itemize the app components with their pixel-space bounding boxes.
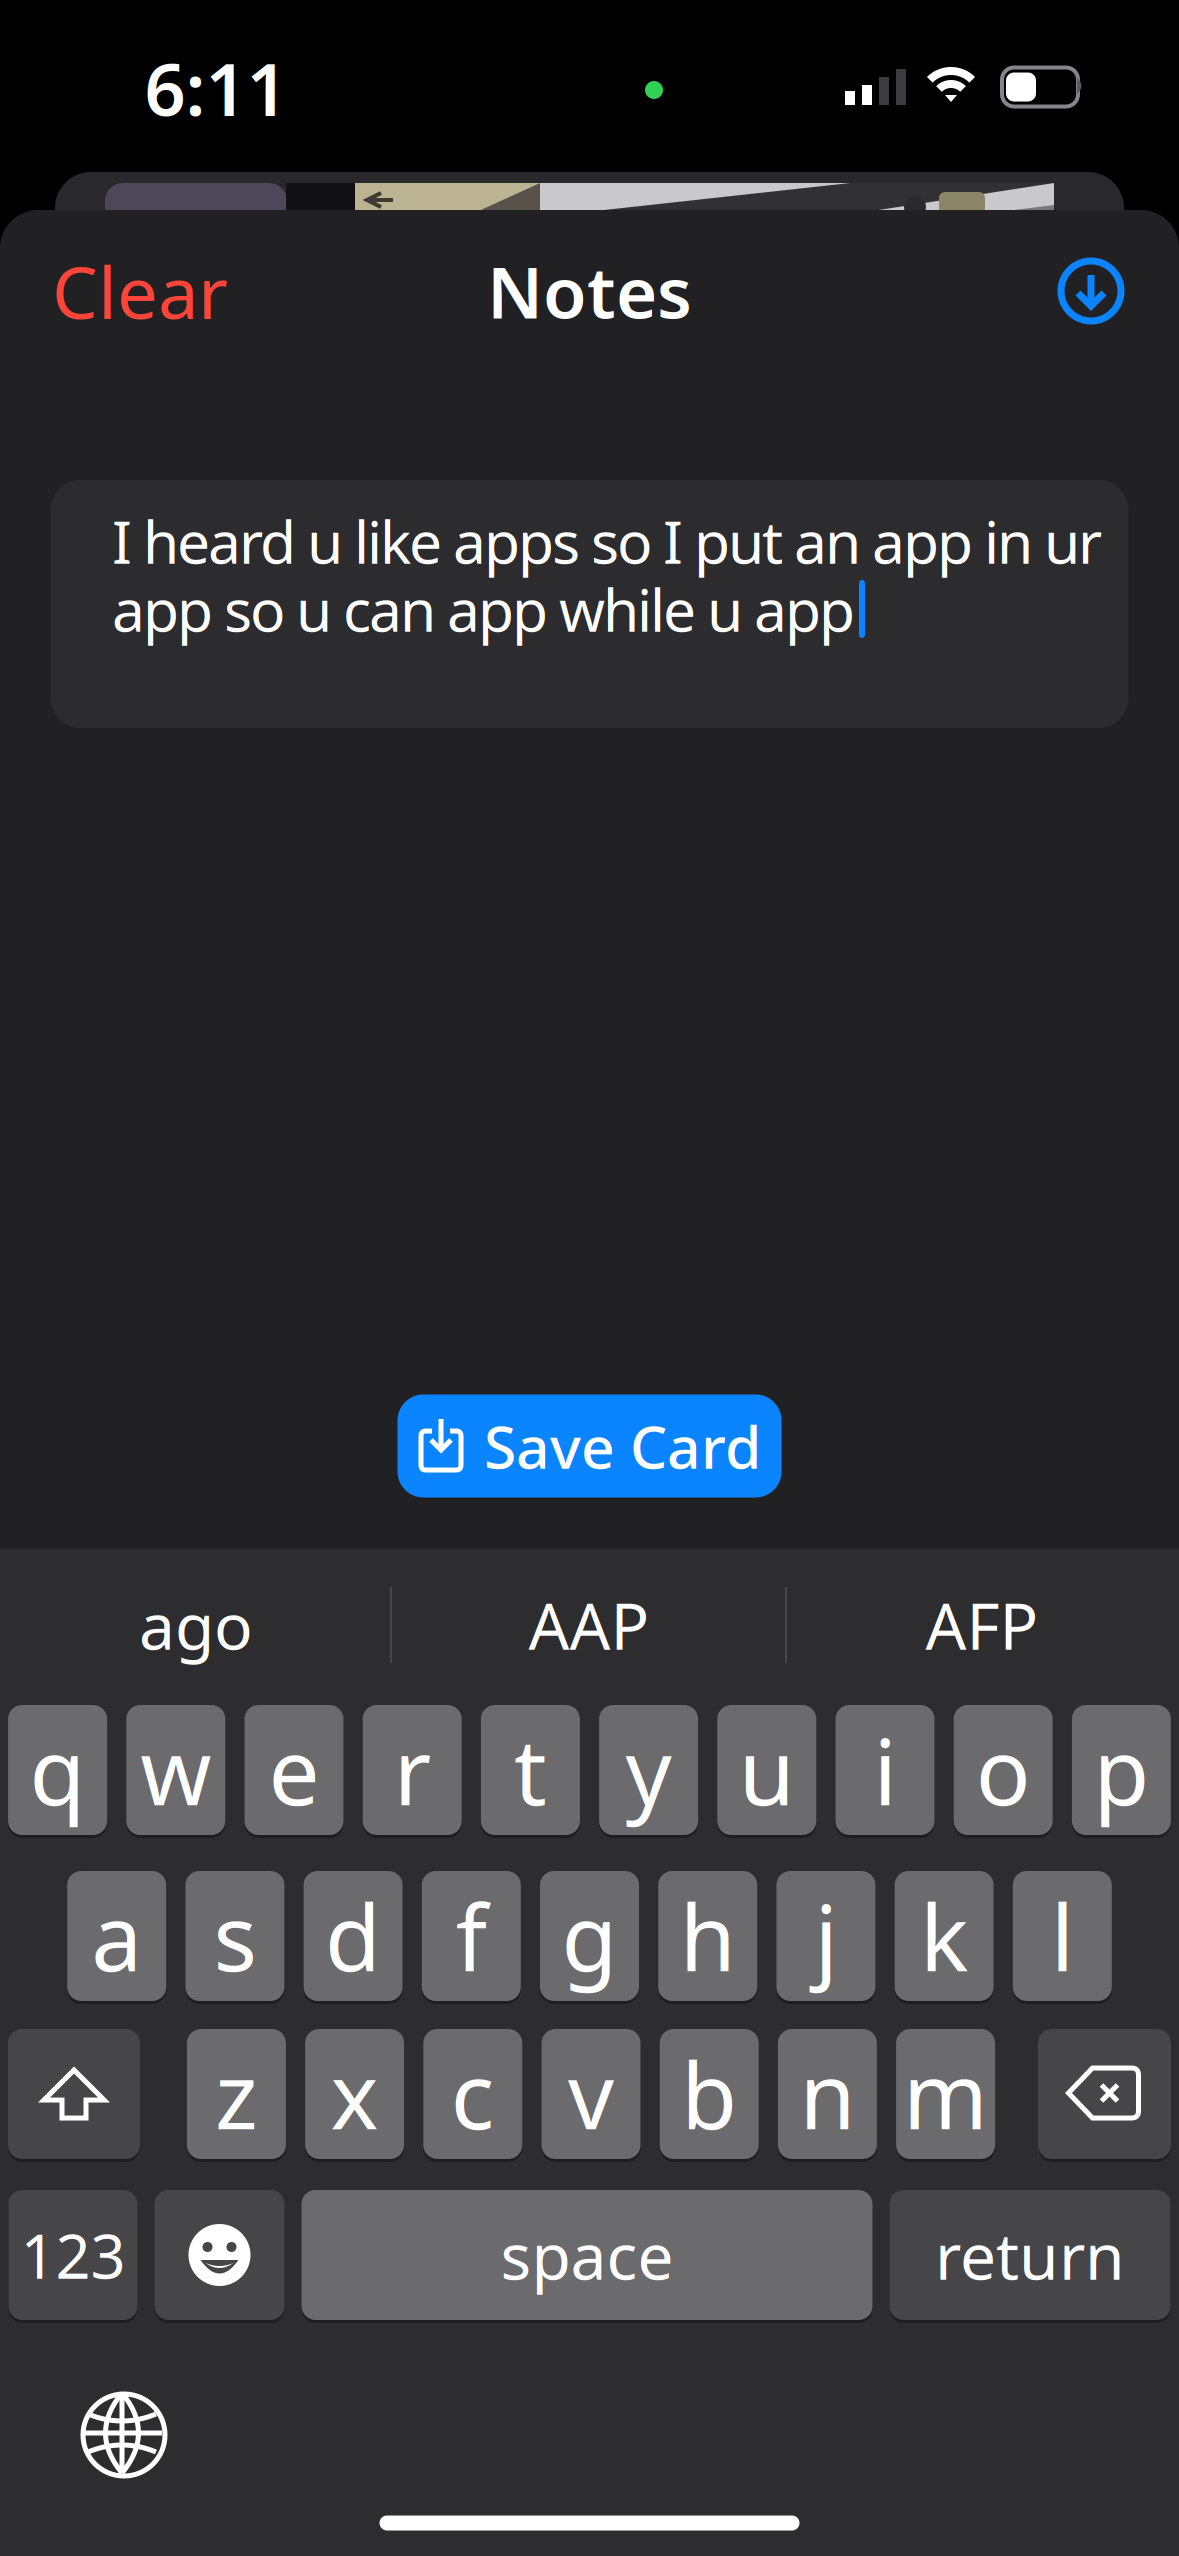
button[interactable]: u	[717, 1705, 816, 1835]
button[interactable]: x	[305, 2029, 404, 2159]
button[interactable]: j	[776, 1871, 875, 2001]
staticText: g	[561, 1876, 617, 1996]
staticText: n	[799, 2034, 855, 2154]
button[interactable]: o	[954, 1705, 1053, 1835]
staticText: AFP	[925, 1582, 1038, 1667]
button[interactable]: Next keyboard	[81, 2392, 167, 2478]
button[interactable]: i	[835, 1705, 934, 1835]
button[interactable]: w	[126, 1705, 225, 1835]
button[interactable]: Clear	[52, 251, 352, 331]
button[interactable]: v	[541, 2029, 640, 2159]
button[interactable]: s	[185, 1871, 284, 2001]
staticText: 123	[20, 2214, 125, 2296]
staticText: Save Card	[484, 1407, 761, 1485]
button[interactable]: l	[1013, 1871, 1112, 2001]
button[interactable]: AFP	[792, 1569, 1172, 1681]
button[interactable]: a	[67, 1871, 166, 2001]
staticText: app so u can app while u app	[112, 570, 855, 648]
button[interactable]: q	[8, 1705, 107, 1835]
button[interactable]: m	[896, 2029, 995, 2159]
staticText: w	[140, 1710, 211, 1830]
button[interactable]: Emoji	[154, 2190, 284, 2320]
button[interactable]: e	[244, 1705, 343, 1835]
staticText: j	[814, 1876, 837, 1996]
staticText: Clear	[52, 243, 228, 339]
button[interactable]: p	[1072, 1705, 1171, 1835]
staticText: b	[681, 2034, 737, 2154]
button[interactable]: d	[304, 1871, 403, 2001]
staticText: o	[976, 1710, 1031, 1830]
button[interactable]: Delete	[1038, 2029, 1171, 2159]
staticText: space	[500, 2212, 673, 2297]
staticText: Notes	[487, 244, 692, 338]
staticText: k	[920, 1876, 968, 1996]
staticText: z	[215, 2034, 258, 2154]
button[interactable]: f	[422, 1871, 521, 2001]
button[interactable]: b	[660, 2029, 759, 2159]
button[interactable]: space	[301, 2190, 872, 2320]
staticText: v	[568, 2034, 614, 2154]
button[interactable]: Note text	[50, 480, 1128, 728]
staticText: ago	[139, 1582, 253, 1667]
staticText: e	[268, 1710, 319, 1830]
button[interactable]: z	[187, 2029, 286, 2159]
button[interactable]: return	[889, 2190, 1170, 2320]
staticText: c	[451, 2034, 495, 2154]
staticText: q	[30, 1710, 86, 1830]
button[interactable]: k	[895, 1871, 994, 2001]
button[interactable]: h	[658, 1871, 757, 2001]
staticText: return	[935, 2212, 1125, 2297]
button[interactable]: Dismiss	[1058, 258, 1124, 324]
staticText: AAP	[528, 1582, 649, 1667]
staticText: s	[213, 1876, 256, 1996]
button[interactable]: Save Card	[397, 1394, 781, 1497]
button[interactable]: Shift	[8, 2029, 140, 2159]
staticText: x	[331, 2034, 379, 2154]
button[interactable]: ago	[6, 1569, 386, 1681]
button[interactable]: y	[599, 1705, 698, 1835]
button[interactable]: t	[481, 1705, 580, 1835]
staticText: h	[680, 1876, 736, 1996]
staticText: t	[514, 1710, 547, 1830]
staticText: l	[1051, 1876, 1074, 1996]
button[interactable]: n	[778, 2029, 877, 2159]
button[interactable]: r	[363, 1705, 462, 1835]
staticText: i	[873, 1710, 896, 1830]
staticText: p	[1093, 1710, 1149, 1830]
button[interactable]: 123	[8, 2190, 137, 2320]
staticText: r	[394, 1710, 431, 1830]
staticText: I heard u like apps so I put an app in u…	[112, 502, 1102, 580]
button[interactable]: AAP	[399, 1569, 779, 1681]
staticText: m	[903, 2034, 988, 2154]
staticText: 6:11	[144, 40, 287, 136]
staticText: f	[456, 1876, 487, 1996]
staticText: y	[626, 1710, 672, 1830]
staticText: d	[325, 1876, 381, 1996]
button[interactable]: g	[540, 1871, 639, 2001]
button[interactable]: c	[423, 2029, 522, 2159]
staticText: a	[91, 1876, 142, 1996]
staticText: u	[739, 1710, 795, 1830]
